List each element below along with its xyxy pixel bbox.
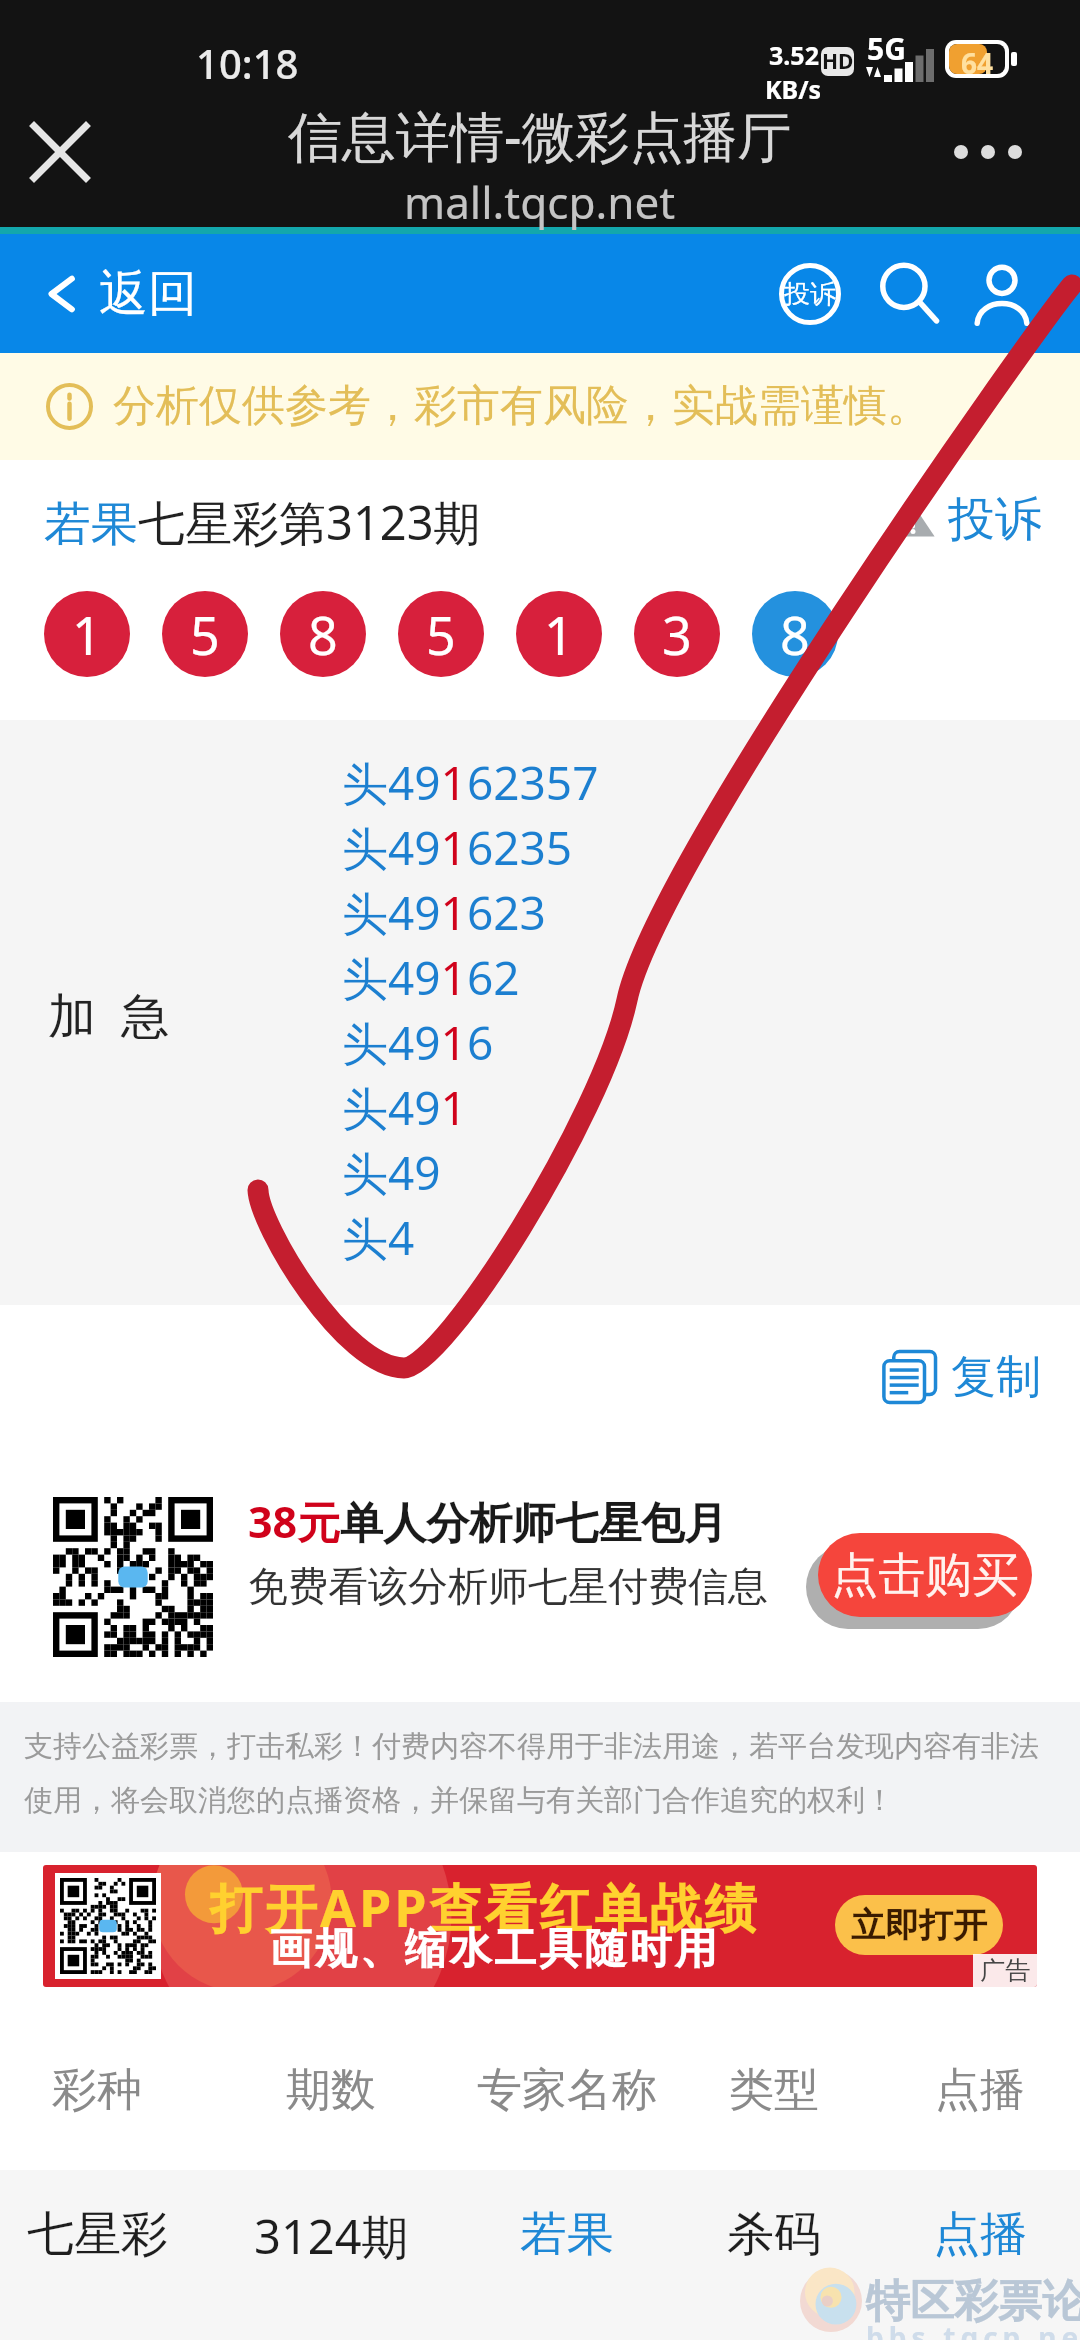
button[interactable]: Profile — [960, 252, 1044, 336]
staticText: 头4 — [342, 1206, 415, 1269]
staticText: 5 — [190, 599, 220, 670]
staticText: 64 — [961, 44, 994, 74]
button[interactable]: 3124期 — [191, 2204, 471, 2264]
staticText: 3.52 — [769, 38, 819, 72]
button[interactable]: 5 — [162, 591, 248, 677]
staticText: 5G — [867, 28, 906, 69]
button[interactable]: 1 — [516, 591, 602, 677]
staticText: 8 — [308, 599, 338, 670]
staticText: 头4916 — [342, 1011, 494, 1074]
staticText: 头49162357 — [342, 751, 599, 814]
staticText: 分析仅供参考，彩市有风险，实战需谨慎。 — [113, 379, 930, 433]
staticText: 专家名称 — [477, 2062, 657, 2119]
staticText: 38元单人分析师七星包月 — [248, 1492, 728, 1551]
button[interactable]: 5 — [398, 591, 484, 677]
staticText: KB/s — [765, 72, 822, 106]
button[interactable]: 复制 — [881, 1348, 1041, 1406]
staticText: 返回 — [99, 263, 197, 325]
staticText: 头49162 — [342, 946, 520, 1009]
staticText: 画规、缩水工具随时用 — [268, 1923, 718, 1976]
staticText: 5 — [426, 599, 456, 670]
staticText: 复制 — [951, 1349, 1041, 1406]
staticText: 期数 — [286, 2062, 376, 2119]
staticText: 免费看该分析师七星付费信息 — [248, 1561, 768, 1611]
staticText: 头4916235 — [342, 816, 573, 879]
staticText: mall.tqcp.net — [404, 172, 676, 232]
staticText: 类型 — [729, 2062, 819, 2119]
staticText: 若果 — [520, 2205, 614, 2264]
staticText: 特区彩票论坛 — [866, 2274, 1080, 2329]
staticText: 3124期 — [254, 2204, 409, 2264]
staticText: 头491623 — [342, 881, 546, 944]
staticText: 使用，将会取消您的点播资格，并保留与有关部门合作追究的权利！ — [24, 1782, 894, 1819]
staticText: 七星彩 — [27, 2205, 168, 2264]
staticText: 8 — [780, 599, 810, 670]
staticText: bbs.tqcp.net — [866, 2318, 1080, 2340]
button[interactable]: 点播 — [840, 2204, 1080, 2264]
staticText: 加 急 — [48, 982, 169, 1048]
button[interactable]: 若果 — [427, 2204, 707, 2264]
button[interactable]: More options — [925, 106, 1050, 198]
staticText: 头491 — [342, 1076, 467, 1139]
staticText: 投诉 — [948, 490, 1042, 549]
button[interactable]: 打开APP查看红单战绩 — [43, 1865, 1037, 1987]
button[interactable]: 3 — [634, 591, 720, 677]
staticText: 头49 — [342, 1141, 441, 1204]
staticText: 投诉 — [784, 278, 836, 311]
staticText: 10:18 — [196, 36, 299, 90]
button[interactable]: Close — [14, 106, 106, 198]
button[interactable]: Search — [867, 252, 951, 336]
button[interactable]: 返回 — [44, 234, 270, 353]
staticText: 点播 — [935, 2062, 1025, 2119]
staticText: 广告 — [980, 1955, 1030, 1986]
staticText: 立即打开 — [851, 1904, 987, 1947]
button[interactable]: 8 — [280, 591, 366, 677]
staticText: 点播 — [933, 2205, 1027, 2264]
button[interactable]: 七星彩 — [0, 2204, 237, 2264]
staticText: 支持公益彩票，打击私彩！付费内容不得用于非法用途，若平台发现内容有非法 — [24, 1728, 1039, 1765]
staticText: 1 — [544, 599, 574, 670]
staticText: 杀码 — [727, 2205, 821, 2264]
staticText: 若果七星彩第3123期 — [44, 490, 481, 554]
staticText: 信息详情-微彩点播厅 — [288, 98, 792, 172]
staticText: 1 — [72, 599, 102, 670]
staticText: 彩种 — [52, 2062, 142, 2119]
button[interactable]: 杀码 — [634, 2204, 914, 2264]
button[interactable]: 立即打开 — [835, 1895, 1003, 1955]
button[interactable]: 点击购买 — [818, 1533, 1032, 1617]
staticText: 3 — [662, 599, 692, 670]
staticText: 打开APP查看红单战绩 — [210, 1871, 760, 1942]
staticText: HD — [822, 47, 854, 76]
button[interactable]: 投诉 — [890, 490, 1042, 549]
staticText: 点击购买 — [831, 1546, 1019, 1605]
button[interactable]: 8 — [752, 591, 838, 677]
button[interactable]: 投诉 — [768, 252, 852, 336]
button[interactable]: 1 — [44, 591, 130, 677]
